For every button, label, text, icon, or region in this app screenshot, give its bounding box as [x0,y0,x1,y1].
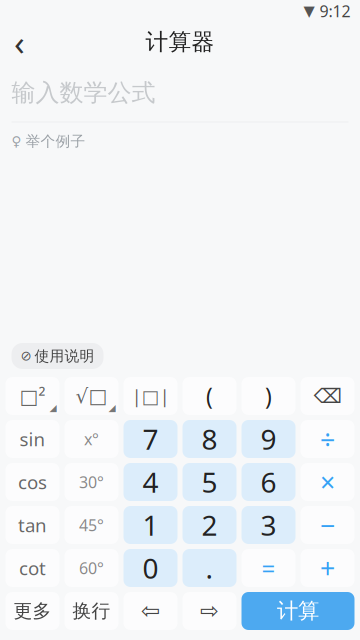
staticText: ♀ [11,134,21,149]
staticText: 3 [260,506,276,544]
staticText: 2 [201,506,217,544]
button[interactable]: 0 [123,549,177,587]
staticText: + [320,550,335,586]
staticText: 更多 [13,599,51,622]
staticText: 5 [201,463,217,501]
staticText: x° [84,428,99,450]
button[interactable]: sin [5,420,59,458]
button[interactable]: . [182,549,236,587]
staticText: ◢ [49,402,56,413]
button[interactable]: |□| [123,377,177,415]
staticText: 举个例子 [25,132,85,150]
button[interactable]: 6 [241,463,295,501]
staticText: ⊘ [20,348,31,363]
button[interactable]: ÷ [300,420,354,458]
button[interactable]: − [300,506,354,544]
staticText: ‹ [14,19,25,65]
button[interactable]: 1 [123,506,177,544]
staticText: 7 [142,420,158,458]
button[interactable]: 30° [64,463,118,501]
staticText: 9 [260,420,276,458]
button[interactable]: 右移 [182,592,236,630]
staticText: 6 [260,463,276,501]
staticText: 计算器 [145,28,214,56]
staticText: 8 [201,420,217,458]
staticText: 计算 [277,598,319,624]
staticText: □² [19,383,45,409]
staticText: ◢ [108,402,115,413]
staticText: 1 [142,506,158,544]
staticText: = [261,552,275,584]
staticText: ▼ [303,3,314,19]
staticText: sin [19,427,45,451]
staticText: − [320,507,335,543]
staticText: 输入数学公式 [11,78,155,107]
button[interactable]: □² [5,377,59,415]
staticText: 30° [79,471,104,493]
button[interactable]: cos [5,463,59,501]
button[interactable]: 8 [182,420,236,458]
button[interactable]: 更多 [5,592,59,630]
button[interactable]: ( [182,377,236,415]
button[interactable]: 返回 [0,22,41,62]
staticText: cos [18,470,47,494]
button[interactable]: √□ [64,377,118,415]
button[interactable]: 删除 [300,377,354,415]
button[interactable]: 3 [241,506,295,544]
button[interactable]: ) [241,377,295,415]
staticText: ⌫ [313,385,341,407]
button[interactable]: 2 [182,506,236,544]
button[interactable]: + [300,549,354,587]
staticText: 9:12 [319,0,350,22]
button[interactable]: × [300,463,354,501]
button[interactable]: 5 [182,463,236,501]
staticText: 换行 [72,599,110,622]
button[interactable]: 45° [64,506,118,544]
staticText: . [205,549,213,587]
staticText: ⇨ [200,598,219,624]
staticText: ⇦ [141,598,160,624]
button[interactable]: tan [5,506,59,544]
button[interactable]: 4 [123,463,177,501]
button[interactable]: 9 [241,420,295,458]
button[interactable]: 左移 [123,592,177,630]
staticText: cot [19,556,46,580]
staticText: 45° [79,514,104,536]
button[interactable]: = [241,549,295,587]
button[interactable]: cot [5,549,59,587]
button[interactable]: ⊘ [11,343,103,369]
staticText: 使用说明 [34,347,94,365]
button[interactable]: 60° [64,549,118,587]
staticText: × [320,464,335,500]
button[interactable]: 7 [123,420,177,458]
button[interactable]: x° [64,420,118,458]
staticText: 60° [79,557,104,579]
staticText: 4 [142,463,158,501]
staticText: tan [18,513,47,537]
button[interactable]: 换行 [64,592,118,630]
button[interactable]: 计算 [241,592,354,630]
staticText: ( [206,381,213,411]
staticText: |□| [131,384,169,408]
staticText: √□ [75,385,107,407]
staticText: ) [265,381,272,411]
staticText: ÷ [320,421,335,457]
staticText: 0 [142,549,158,587]
